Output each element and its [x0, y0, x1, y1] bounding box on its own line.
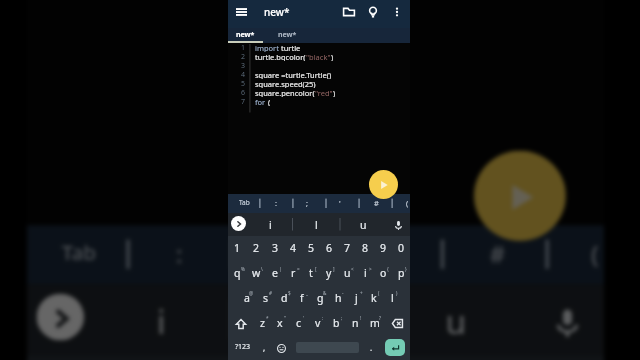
button[interactable]: w	[247, 262, 266, 286]
button[interactable]: q	[228, 262, 247, 286]
button[interactable]: ;	[296, 194, 318, 213]
button[interactable]: Run	[369, 170, 398, 199]
button[interactable]: Expand suggestions	[231, 216, 246, 231]
button[interactable]: 7	[338, 236, 356, 262]
button[interactable]: ;	[243, 225, 312, 284]
staticText: Tab	[62, 238, 97, 266]
button[interactable]: u	[382, 284, 531, 356]
button[interactable]: m	[365, 311, 384, 336]
button[interactable]: p	[392, 262, 410, 286]
staticText: )	[333, 88, 336, 97]
button[interactable]: Enter	[385, 339, 405, 356]
button[interactable]: 3	[266, 236, 284, 262]
button[interactable]: f	[293, 286, 311, 311]
button[interactable]: Open folder	[340, 3, 358, 21]
staticText: a	[244, 291, 250, 305]
button[interactable]: i	[356, 262, 374, 286]
staticText: %	[241, 266, 245, 272]
button[interactable]: Voice input	[390, 217, 406, 233]
button[interactable]: l	[383, 286, 401, 311]
button[interactable]: new*	[228, 28, 263, 43]
button[interactable]: t	[302, 262, 320, 286]
button[interactable]: i	[90, 284, 233, 356]
button[interactable]: v	[308, 311, 327, 336]
button[interactable]: 8	[356, 236, 374, 262]
button[interactable]: #	[365, 194, 387, 213]
button[interactable]: Voice input	[540, 297, 591, 347]
button[interactable]: n	[346, 311, 365, 336]
button[interactable]: 4	[284, 236, 302, 262]
button[interactable]: d	[275, 286, 293, 311]
button[interactable]: h	[329, 286, 347, 311]
button[interactable]: a	[237, 286, 256, 311]
button[interactable]: 5	[302, 236, 320, 262]
button[interactable]: x	[271, 311, 289, 336]
button[interactable]: :	[265, 194, 287, 213]
button[interactable]: u	[340, 213, 387, 236]
button[interactable]: 7	[376, 356, 433, 360]
staticText: f	[300, 291, 304, 305]
button[interactable]: Expand suggestions	[36, 294, 84, 340]
staticText: 3	[272, 241, 279, 255]
button[interactable]: Emoji	[273, 336, 290, 360]
staticText: 7	[241, 97, 246, 106]
button[interactable]: (	[396, 194, 418, 213]
staticText: <	[351, 266, 354, 272]
button[interactable]: 1	[228, 236, 247, 262]
button[interactable]: Run	[474, 151, 566, 241]
button[interactable]: s	[256, 286, 275, 311]
button[interactable]: k	[365, 286, 383, 311]
button[interactable]: l	[293, 213, 340, 236]
button[interactable]: ,	[256, 336, 273, 360]
staticText: ]	[333, 266, 335, 272]
button[interactable]: Shift	[228, 311, 253, 336]
button[interactable]: Backspace	[384, 311, 410, 336]
staticText: s	[263, 291, 269, 305]
button[interactable]: Tab	[233, 194, 255, 213]
button[interactable]: 9	[374, 236, 392, 262]
button[interactable]: 4	[204, 356, 262, 360]
button[interactable]: 0	[392, 236, 410, 262]
button[interactable]: 6	[320, 236, 338, 262]
button[interactable]: z	[253, 311, 271, 336]
staticText: r	[291, 266, 296, 280]
button[interactable]: ?123	[231, 336, 255, 360]
button[interactable]: 2	[247, 236, 266, 262]
button[interactable]: Tab	[43, 225, 112, 284]
button[interactable]: l	[233, 284, 382, 356]
button[interactable]: b	[327, 311, 346, 336]
staticText: 6	[326, 241, 333, 255]
button[interactable]: new*	[263, 28, 311, 43]
button[interactable]: #	[461, 225, 531, 284]
button[interactable]: .	[363, 336, 380, 360]
button[interactable]: y	[320, 262, 338, 286]
staticText: $	[288, 290, 291, 296]
staticText: '	[303, 315, 305, 321]
button[interactable]: g	[311, 286, 329, 311]
button[interactable]: Menu	[233, 4, 249, 20]
button[interactable]: o	[374, 262, 392, 286]
button[interactable]: Hint	[364, 3, 382, 21]
staticText: ;	[306, 198, 309, 208]
button[interactable]: c	[289, 311, 308, 336]
button[interactable]: '	[347, 225, 417, 284]
button[interactable]: j	[347, 286, 365, 311]
button[interactable]: More options	[388, 3, 406, 21]
button[interactable]: r	[284, 262, 302, 286]
staticText: 8	[362, 241, 369, 255]
button[interactable]: (	[560, 225, 629, 284]
button[interactable]: u	[338, 262, 356, 286]
button[interactable]: e	[266, 262, 284, 286]
button[interactable]: '	[329, 194, 351, 213]
button[interactable]: i	[248, 213, 293, 236]
